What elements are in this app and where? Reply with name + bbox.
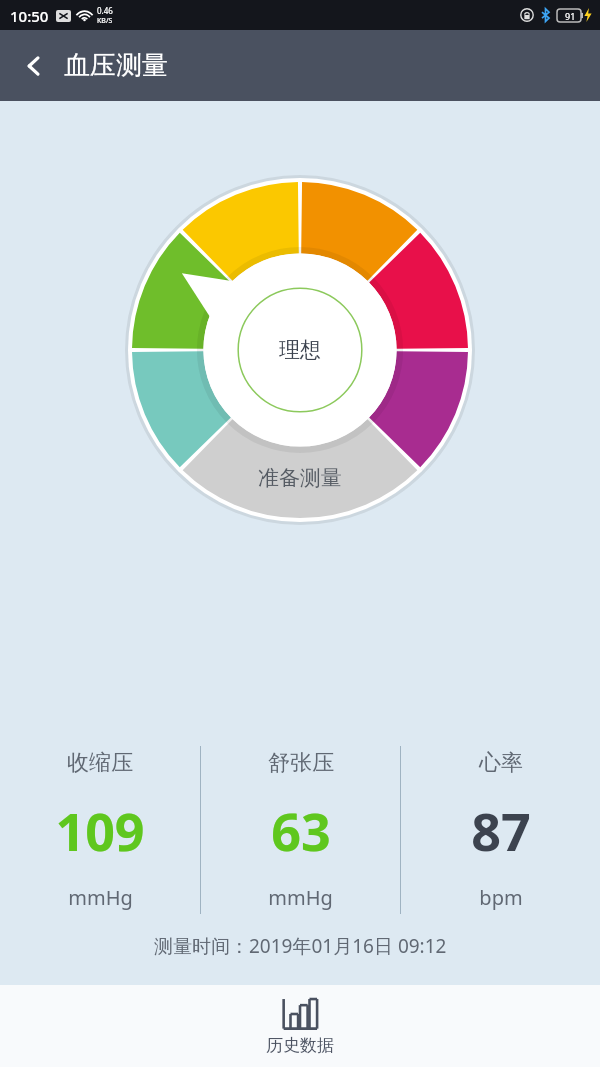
staticText: 87	[471, 795, 531, 866]
staticText: 历史数据	[266, 1035, 334, 1056]
staticText: 准备测量	[258, 465, 342, 491]
staticText: mmHg	[268, 884, 333, 911]
button[interactable]: 历史数据	[238, 991, 362, 1062]
staticText: 舒张压	[268, 749, 334, 777]
button[interactable]: Back	[10, 42, 58, 90]
staticText: 测量时间：2019年01月16日 09:12	[154, 933, 447, 959]
staticText: bpm	[479, 884, 523, 911]
staticText: 血压测量	[64, 49, 168, 82]
staticText: mmHg	[68, 884, 133, 911]
staticText: 心率	[479, 749, 523, 777]
staticText: 91	[565, 10, 576, 22]
staticText: 0.46	[97, 5, 113, 16]
staticText: 109	[55, 795, 145, 866]
staticText: 理想	[279, 337, 321, 363]
staticText: 收缩压	[67, 749, 133, 777]
staticText: 10:50	[10, 6, 49, 26]
staticText: KB/S	[97, 16, 113, 26]
staticText: 63	[271, 795, 331, 866]
